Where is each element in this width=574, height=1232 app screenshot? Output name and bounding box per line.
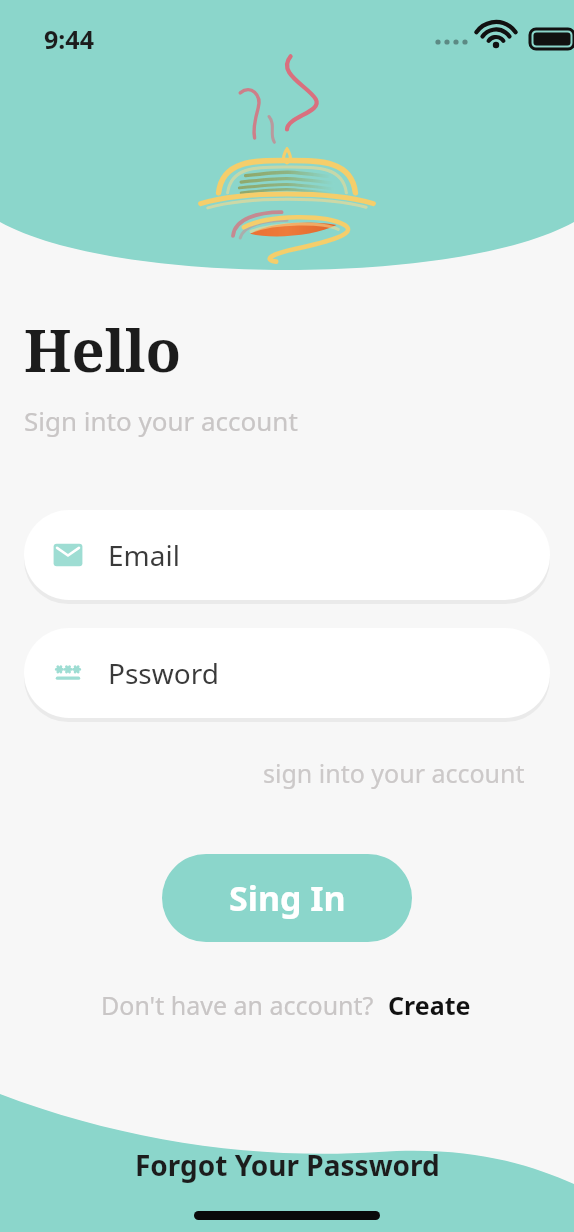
- button[interactable]: Forgot Your Password: [0, 1128, 574, 1232]
- staticText: Pssword: [108, 654, 219, 692]
- button[interactable]: sign into your account: [261, 754, 527, 792]
- staticText: Hello: [24, 310, 182, 389]
- button[interactable]: Sing In: [162, 854, 412, 942]
- staticText: Sing In: [229, 875, 346, 921]
- staticText: sign into your account: [263, 756, 525, 790]
- staticText: Don't have an account?: [101, 988, 374, 1022]
- staticText: 9:44: [44, 22, 94, 56]
- button[interactable]: Pssword: [24, 628, 550, 718]
- button[interactable]: Create: [386, 986, 473, 1024]
- staticText: Create: [388, 988, 471, 1022]
- staticText: Sign into your account: [24, 403, 298, 438]
- staticText: Email: [108, 536, 180, 574]
- staticText: Forgot Your Password: [135, 1146, 440, 1184]
- button[interactable]: Email: [24, 510, 550, 600]
